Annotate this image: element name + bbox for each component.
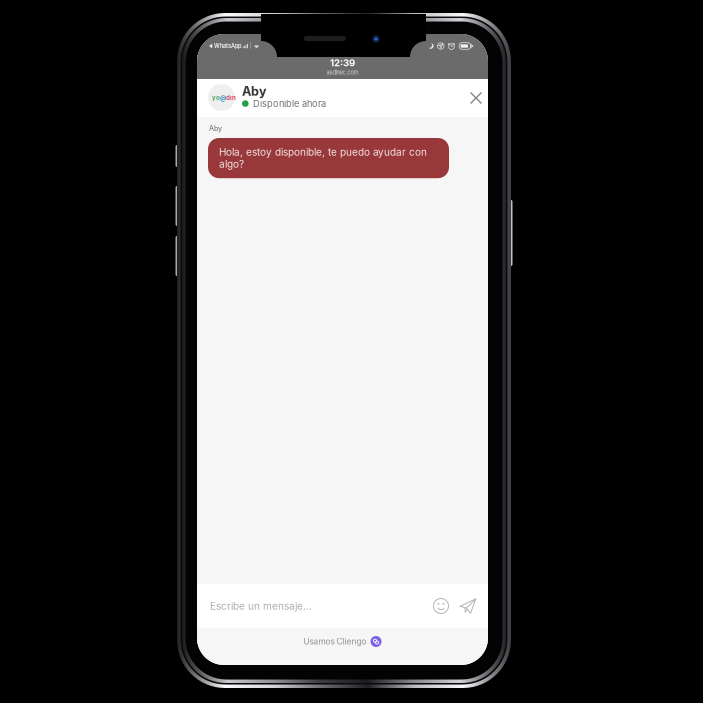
staticText: WhatsApp [214, 43, 241, 49]
button[interactable]: Cerrar chat [462, 84, 490, 112]
staticText: Aby [242, 83, 267, 99]
button[interactable]: Emoji [428, 593, 454, 619]
staticText: Hola, estoy disponible, te puedo ayudar … [219, 146, 427, 170]
staticText: asdinec.com [326, 69, 358, 76]
staticText: yo [212, 94, 220, 101]
staticText: | [250, 43, 252, 49]
staticText: 12:39 [330, 57, 355, 69]
staticText: din [226, 94, 236, 101]
button[interactable]: Enviar mensaje [455, 593, 481, 619]
staticText: Usamos Cliengo [303, 636, 366, 646]
staticText: Disponible ahora [253, 98, 326, 109]
staticText: @ [220, 94, 226, 101]
staticText: Escribe un mensaje... [210, 600, 312, 612]
staticText: Aby [209, 124, 222, 133]
